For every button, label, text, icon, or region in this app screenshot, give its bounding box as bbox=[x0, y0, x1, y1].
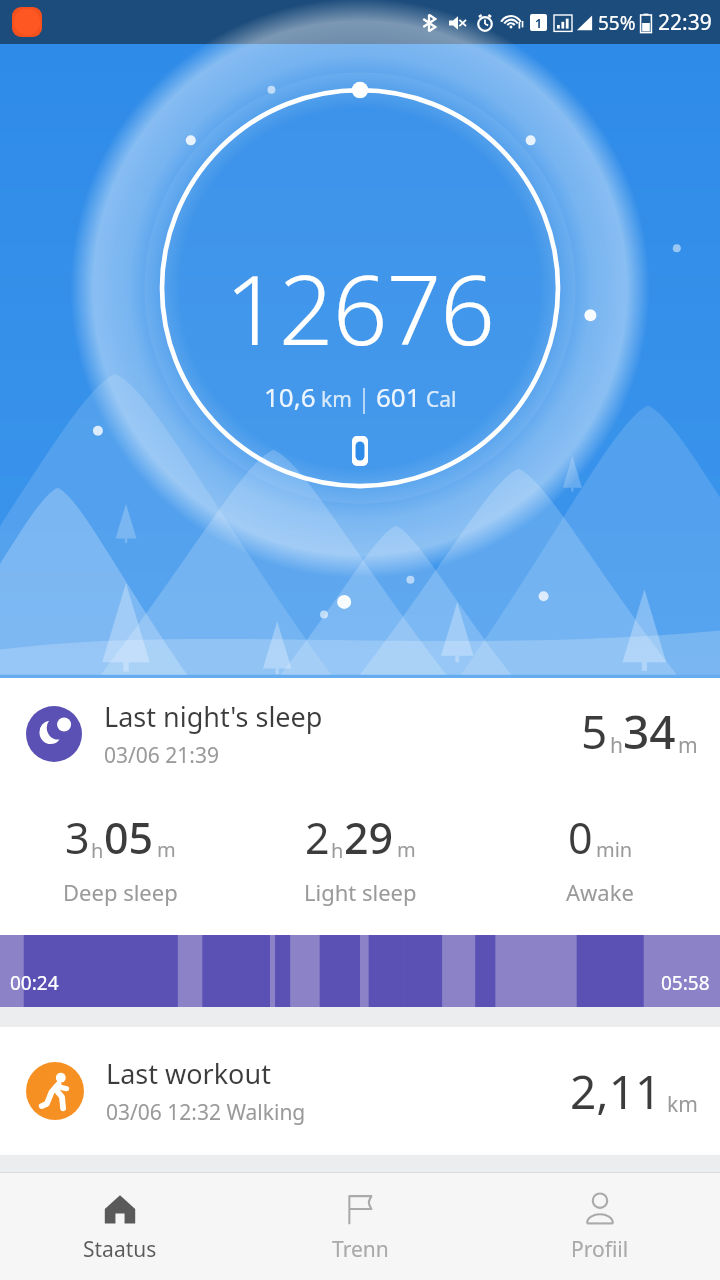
staticText: 5 bbox=[581, 700, 608, 763]
staticText: 12676 bbox=[225, 242, 495, 373]
staticText: 10,6 bbox=[264, 379, 316, 414]
staticText: 05:58 bbox=[661, 970, 710, 996]
staticText: min bbox=[596, 836, 633, 863]
staticText: Last workout bbox=[106, 1055, 271, 1092]
staticText: h bbox=[91, 837, 104, 864]
button[interactable]: Staatus bbox=[0, 1173, 240, 1280]
staticText: m bbox=[397, 836, 416, 863]
staticText: Awake bbox=[566, 877, 634, 907]
staticText: Light sleep bbox=[304, 877, 417, 907]
staticText: h bbox=[331, 837, 344, 864]
staticText: Deep sleep bbox=[63, 877, 178, 907]
staticText: km bbox=[321, 385, 352, 414]
staticText: 601 bbox=[376, 379, 421, 414]
staticText: Cal bbox=[426, 385, 457, 414]
staticText: h bbox=[610, 731, 623, 760]
staticText: Profiil bbox=[571, 1235, 629, 1264]
staticText: 2,11 bbox=[570, 1060, 662, 1123]
staticText: 0 bbox=[568, 808, 593, 867]
staticText: 55% bbox=[598, 10, 636, 36]
other: Band bbox=[352, 436, 368, 466]
staticText: 3 bbox=[65, 808, 90, 867]
staticText: m bbox=[157, 836, 176, 863]
button[interactable]: Last night's sleep bbox=[0, 678, 720, 935]
staticText: km bbox=[667, 1090, 698, 1119]
staticText: 03/06 21:39 bbox=[104, 741, 219, 770]
staticText: Trenn bbox=[332, 1235, 389, 1264]
staticText: Last night's sleep bbox=[104, 698, 323, 735]
button[interactable]: Profiil bbox=[480, 1173, 720, 1280]
button[interactable]: 00:24 bbox=[0, 935, 720, 1007]
staticText: 1 bbox=[535, 15, 542, 31]
staticText: Staatus bbox=[83, 1235, 157, 1264]
staticText: 03/06 12:32 Walking bbox=[106, 1098, 306, 1127]
staticText: 22:39 bbox=[658, 8, 712, 37]
staticText: m bbox=[678, 731, 698, 760]
staticText: 2 bbox=[305, 808, 330, 867]
button[interactable]: Trenn bbox=[240, 1173, 480, 1280]
staticText: 34 bbox=[623, 700, 676, 763]
staticText: 05 bbox=[104, 808, 154, 867]
staticText: 00:24 bbox=[10, 970, 59, 996]
staticText: 29 bbox=[344, 808, 394, 867]
button[interactable]: Last workout bbox=[26, 1055, 698, 1127]
